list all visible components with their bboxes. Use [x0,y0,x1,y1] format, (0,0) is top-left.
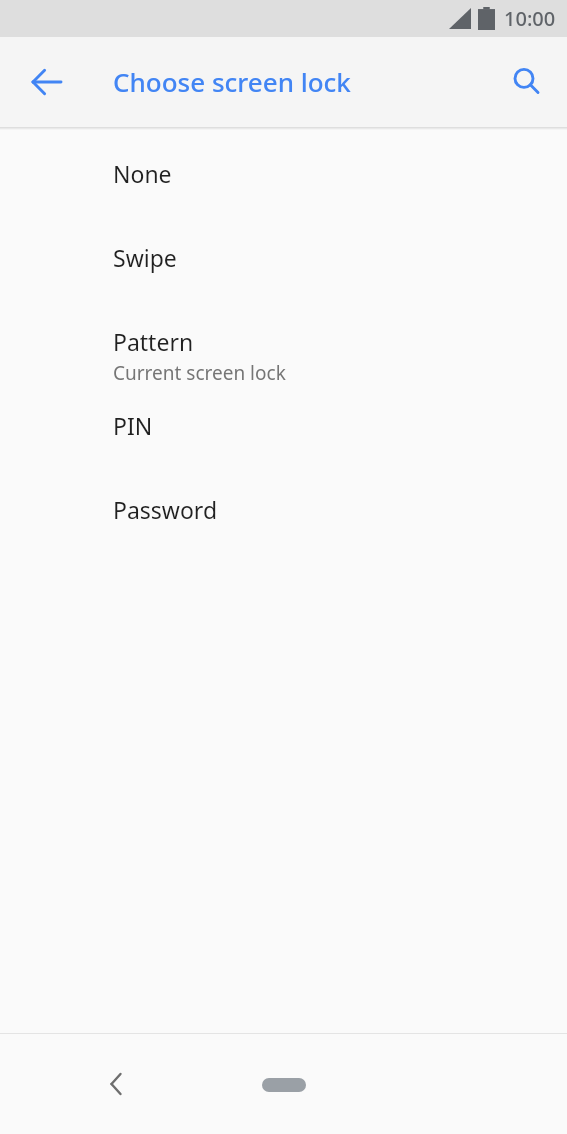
button[interactable]: Back [86,1054,146,1114]
button[interactable]: None [0,148,567,232]
staticText: 10:00 [504,5,556,32]
button[interactable]: Swipe [0,232,567,316]
staticText: Choose screen lock [113,64,351,99]
staticText: Current screen lock [113,360,286,386]
button[interactable]: Home [248,1065,320,1105]
button[interactable]: Pattern [0,316,567,400]
button[interactable]: Search [497,52,557,112]
staticText: None [113,158,172,189]
button[interactable]: PIN [0,400,567,484]
button[interactable]: Password [0,484,567,568]
staticText: Swipe [113,242,177,273]
button[interactable]: Back [17,52,77,112]
staticText: Pattern [113,326,194,357]
staticText: Password [113,494,218,525]
staticText: PIN [113,410,153,441]
